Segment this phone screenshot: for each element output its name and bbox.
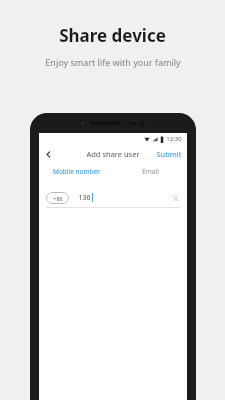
staticText: Submit bbox=[156, 149, 182, 159]
button[interactable]: +86 bbox=[46, 192, 69, 204]
button[interactable]: Back bbox=[39, 145, 57, 163]
button[interactable]: Clear bbox=[170, 193, 180, 203]
staticText: 136 bbox=[78, 193, 91, 203]
staticText: Mobile number bbox=[53, 167, 100, 176]
button[interactable]: Mobile number bbox=[39, 163, 113, 180]
staticText: +86 bbox=[53, 195, 63, 202]
staticText: Enjoy smart life with your family bbox=[45, 56, 181, 68]
staticText: Add share user bbox=[86, 149, 140, 159]
button[interactable]: Submit bbox=[151, 146, 187, 162]
staticText: Email bbox=[142, 167, 159, 176]
staticText: 12:30 bbox=[166, 135, 182, 143]
staticText: Share device bbox=[59, 24, 166, 47]
button[interactable]: Email bbox=[113, 163, 187, 180]
